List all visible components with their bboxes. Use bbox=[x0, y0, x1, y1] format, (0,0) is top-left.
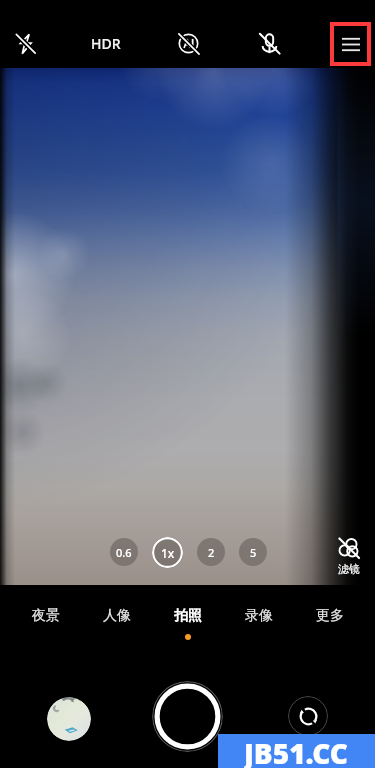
button[interactable]: 拍照 bbox=[152, 605, 223, 627]
staticText: 更多 bbox=[316, 607, 344, 625]
staticText: 滤镜 bbox=[338, 562, 360, 576]
button[interactable]: 0.6 bbox=[110, 538, 138, 566]
staticText: 2 bbox=[208, 545, 215, 560]
button[interactable]: Flash off bbox=[9, 28, 41, 58]
button[interactable]: HDR bbox=[86, 28, 126, 58]
staticText: HDR bbox=[91, 34, 121, 53]
staticText: 拍照 bbox=[174, 607, 202, 625]
button[interactable]: 人像 bbox=[81, 605, 152, 627]
staticText: 夜景 bbox=[32, 607, 60, 625]
button[interactable]: Shutter bbox=[152, 681, 223, 752]
button[interactable]: 2 bbox=[197, 538, 225, 566]
button[interactable]: 1x bbox=[152, 537, 183, 568]
button[interactable]: 录像 bbox=[223, 605, 294, 627]
button[interactable]: Sound off bbox=[253, 28, 285, 58]
staticText: 人像 bbox=[103, 607, 131, 625]
button[interactable]: Switch camera bbox=[288, 696, 328, 736]
button[interactable]: 5 bbox=[239, 538, 267, 566]
button[interactable]: 滤镜 bbox=[337, 536, 361, 576]
staticText: JB51.CC bbox=[244, 734, 349, 768]
button[interactable]: 更多 bbox=[294, 605, 365, 627]
staticText: 0.6 bbox=[116, 545, 132, 560]
button[interactable]: Gallery bbox=[47, 697, 91, 741]
button[interactable]: AI scene off bbox=[172, 28, 204, 58]
staticText: 录像 bbox=[245, 607, 273, 625]
staticText: 1x bbox=[161, 545, 175, 561]
staticText: 5 bbox=[250, 545, 257, 560]
button[interactable]: Menu bbox=[334, 26, 367, 62]
button[interactable]: 夜景 bbox=[10, 605, 81, 627]
